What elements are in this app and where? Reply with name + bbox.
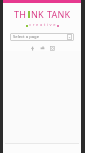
staticText: Select a page bbox=[13, 34, 67, 40]
button[interactable]: TH bbox=[3, 8, 81, 20]
staticText: TH bbox=[14, 8, 27, 20]
button[interactable]: Twitter bbox=[39, 45, 45, 51]
button[interactable]: Facebook bbox=[29, 45, 35, 51]
staticText: c r e a t i v e bbox=[29, 22, 56, 27]
staticText: TANK bbox=[47, 8, 71, 20]
button[interactable]: Instagram bbox=[49, 45, 55, 51]
staticText: NK bbox=[31, 8, 44, 20]
button[interactable]: Select a page bbox=[10, 33, 74, 41]
